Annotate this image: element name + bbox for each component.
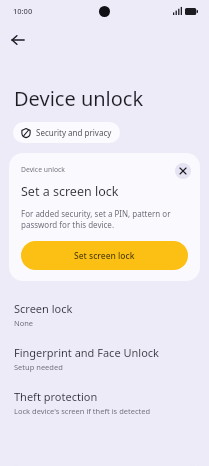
staticText: Device unlock (21, 165, 175, 174)
staticText: Lock device's screen if theft is detecte… (14, 406, 151, 416)
staticText: None (14, 318, 34, 328)
button[interactable]: Screen lock (0, 300, 209, 329)
button[interactable]: Back (4, 26, 32, 54)
staticText: 10:00 (13, 6, 33, 16)
button[interactable]: Set screen lock (21, 241, 188, 270)
button[interactable]: Security and privacy (13, 122, 120, 143)
staticText: Theft protection (14, 389, 98, 404)
staticText: Set screen lock (74, 250, 135, 262)
staticText: For added security, set a PIN, pattern o… (21, 208, 187, 230)
staticText: Screen lock (14, 301, 73, 316)
staticText: Setup needed (14, 362, 63, 372)
button[interactable]: Dismiss (175, 163, 191, 179)
button[interactable]: Fingerprint and Face Unlock (0, 344, 209, 373)
staticText: Fingerprint and Face Unlock (14, 345, 159, 360)
staticText: Device unlock (14, 85, 144, 112)
staticText: Set a screen lock (21, 183, 119, 200)
button[interactable]: Theft protection (0, 388, 209, 417)
staticText: Security and privacy (36, 127, 112, 138)
